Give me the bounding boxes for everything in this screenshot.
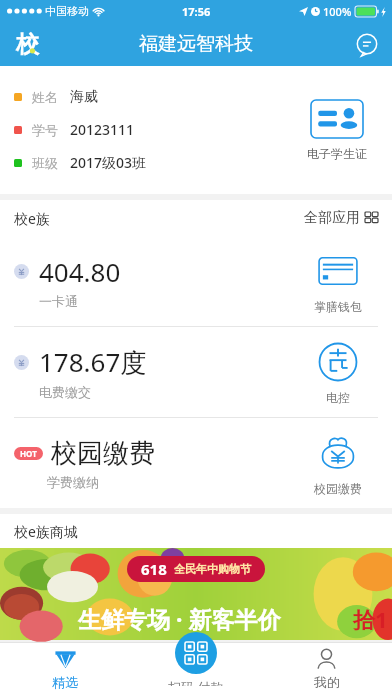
staticText: 电费缴交 (39, 384, 91, 400)
button[interactable]: 电子学生证 (282, 100, 392, 161)
staticText: 精选 (52, 674, 78, 690)
staticText: 学费缴纳 (47, 474, 99, 490)
button[interactable]: HOT (0, 418, 392, 508)
staticText: HOT (20, 448, 37, 459)
staticText: 电子学生证 (307, 146, 367, 161)
staticText: 学号 (32, 122, 58, 138)
staticText: 扫码 付款 (168, 678, 224, 686)
staticText: 全部应用 (304, 209, 360, 227)
staticText: 生鲜专场 · 新客半价 (78, 603, 281, 634)
button[interactable]: 我的 (261, 642, 392, 696)
staticText: 一卡通 (39, 293, 78, 309)
staticText: 178.67度 (39, 344, 147, 380)
staticText: 618 (141, 559, 167, 579)
staticText: 校园缴费 (314, 481, 362, 496)
staticText: 中国移动 (45, 4, 89, 18)
staticText: 掌膳钱包 (314, 299, 362, 314)
button[interactable]: 178.67度 (0, 327, 392, 417)
button[interactable]: Logo (10, 27, 44, 61)
staticText: 17:56 (182, 4, 211, 19)
button[interactable]: 扫码 付款 (168, 632, 224, 686)
staticText: 电控 (326, 390, 350, 405)
button[interactable]: 精选 (0, 642, 130, 696)
staticText: 我的 (314, 674, 340, 690)
staticText: 2017级03班 (70, 153, 147, 172)
button[interactable]: 电控 (284, 340, 392, 405)
button[interactable]: Promotion banner (0, 548, 392, 640)
button[interactable]: Messages (352, 29, 382, 59)
button[interactable]: 404.80 (0, 236, 392, 326)
staticText: 海威 (70, 88, 98, 106)
staticText: 班级 (32, 155, 58, 171)
staticText: 拾1 (353, 604, 388, 634)
staticText: 姓名 (32, 89, 58, 105)
staticText: 100% (323, 4, 352, 19)
staticText: 校园缴费 (51, 437, 155, 470)
staticText: 校e族 (14, 209, 50, 228)
button[interactable]: 全部应用 (304, 209, 378, 227)
staticText: 404.80 (39, 254, 121, 289)
button[interactable]: 掌膳钱包 (284, 249, 392, 314)
staticText: 校 (16, 30, 39, 59)
staticText: 20123111 (70, 120, 135, 139)
staticText: 校e族商城 (14, 522, 78, 541)
staticText: 福建远智科技 (139, 32, 253, 56)
button[interactable]: 校e族商城 (14, 514, 378, 548)
staticText: 全民年中购物节 (174, 562, 251, 576)
button[interactable]: 姓名 (0, 66, 392, 194)
button[interactable]: 校园缴费 (284, 431, 392, 496)
